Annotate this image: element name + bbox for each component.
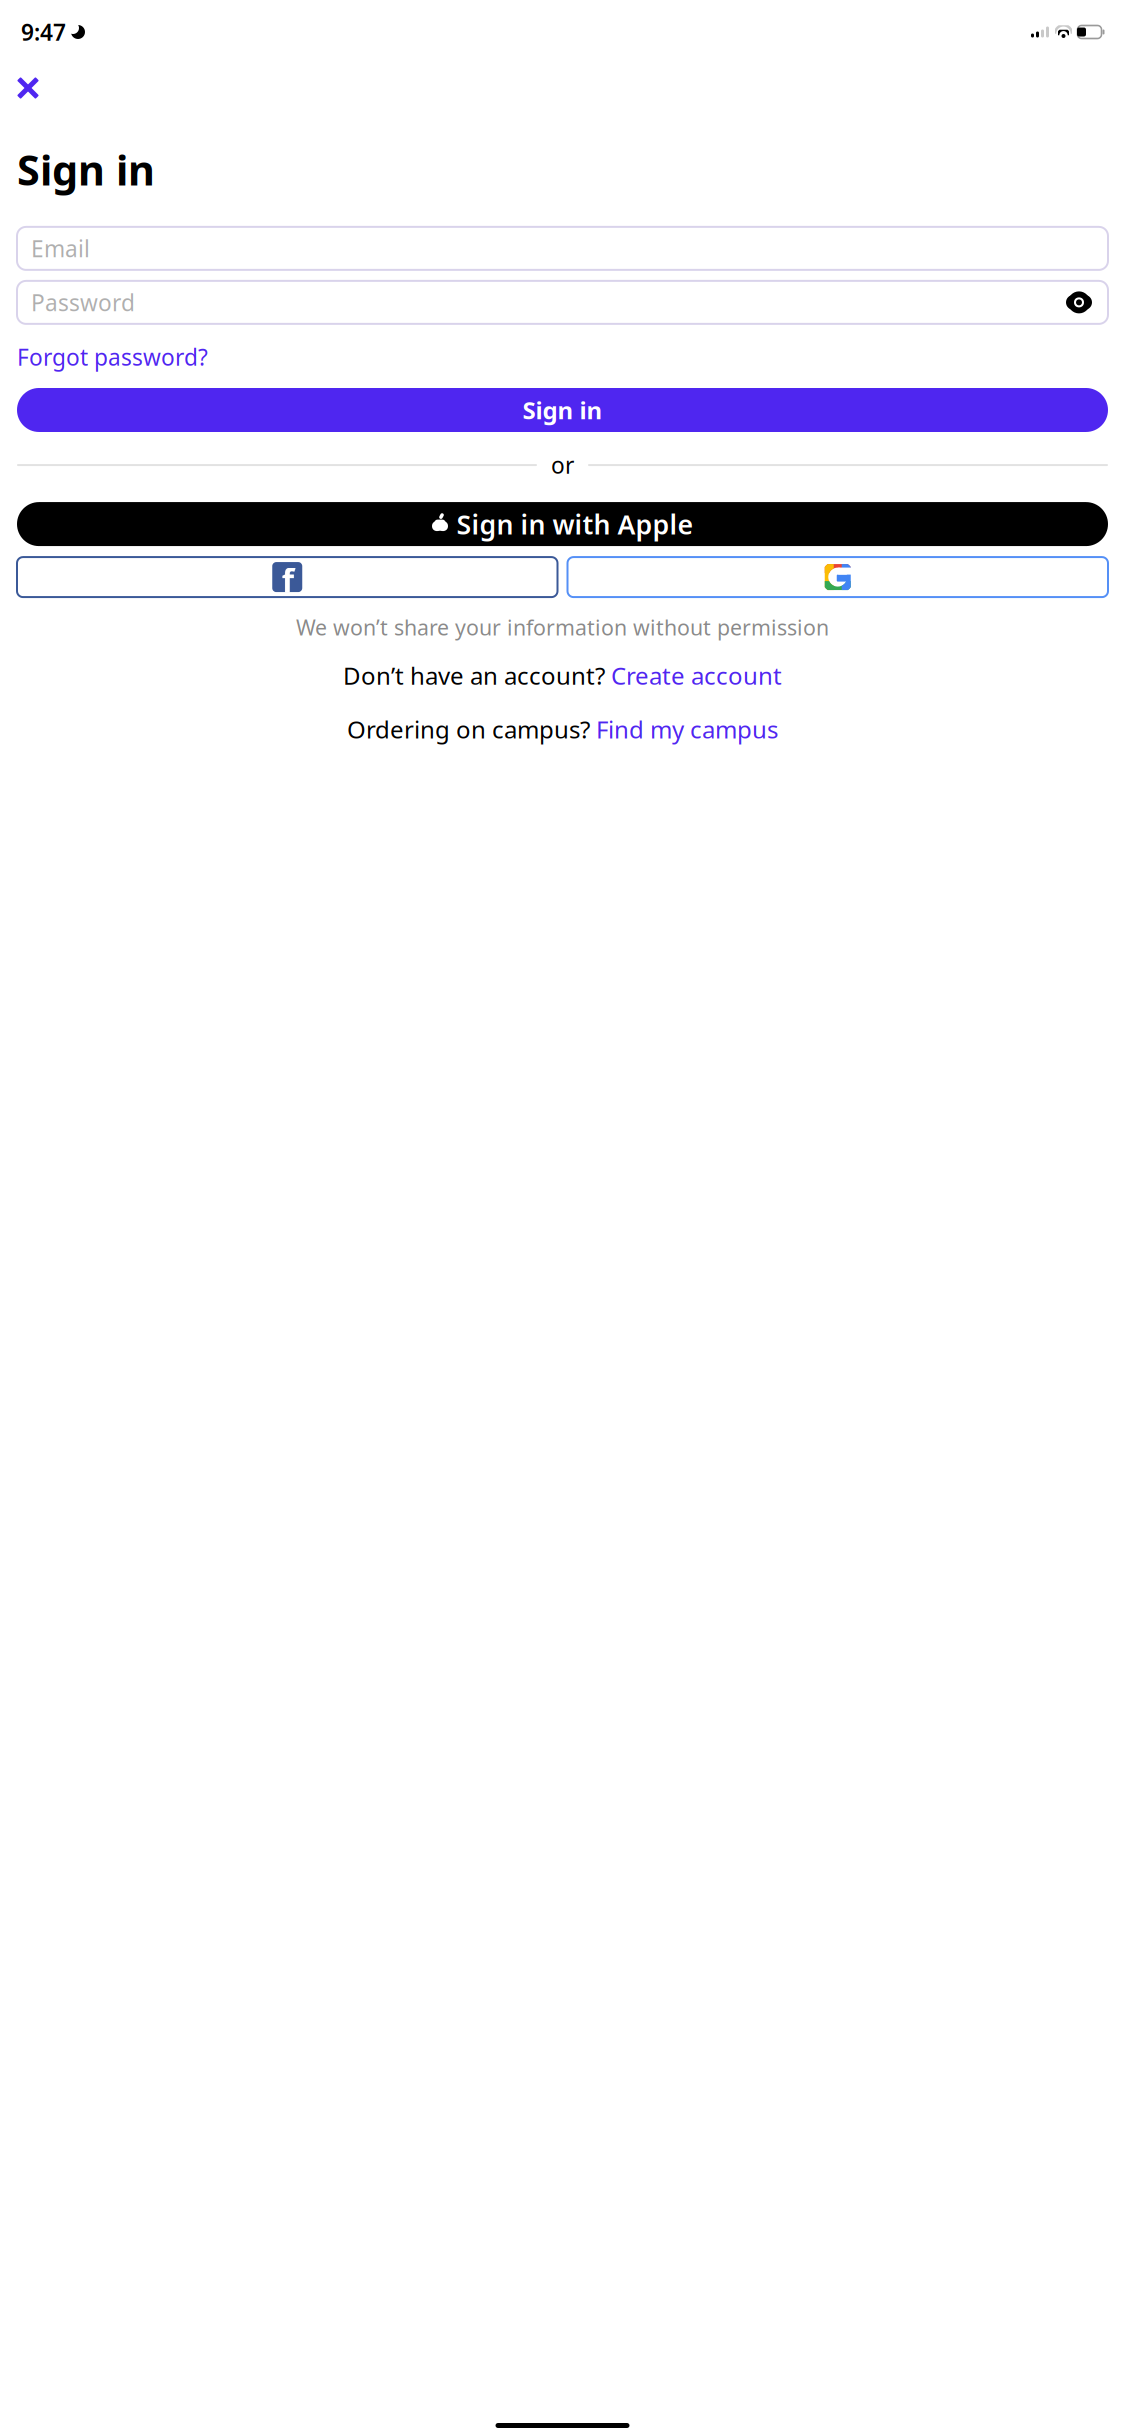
staticText: Ordering on campus? — [347, 713, 590, 745]
staticText: Create account — [611, 659, 782, 691]
button[interactable]: Sign in with Google — [567, 557, 1108, 597]
button[interactable]: Close — [6, 66, 50, 110]
staticText: Password — [31, 287, 135, 317]
button[interactable]: Sign in with Apple — [17, 502, 1108, 546]
staticText: Sign in — [17, 142, 155, 197]
staticText: or — [551, 450, 574, 480]
button[interactable]: Show password — [1064, 291, 1094, 313]
staticText: We won’t share your information without … — [296, 613, 829, 641]
staticText: Find my campus — [596, 713, 778, 745]
staticText: Sign in — [522, 394, 602, 426]
staticText: Sign in with Apple — [456, 506, 693, 542]
button[interactable]: Sign in with Facebook — [17, 557, 557, 597]
button[interactable]: Forgot password? — [17, 336, 208, 378]
staticText: Don’t have an account? — [343, 659, 605, 691]
button[interactable]: Ordering on campus? — [347, 707, 778, 751]
staticText: Email — [31, 233, 90, 263]
button[interactable]: Sign in — [17, 388, 1108, 432]
button[interactable]: Don’t have an account? — [343, 653, 782, 697]
staticText: f — [282, 559, 294, 601]
staticText: 9:47 — [21, 17, 66, 47]
staticText: Forgot password? — [17, 342, 208, 372]
